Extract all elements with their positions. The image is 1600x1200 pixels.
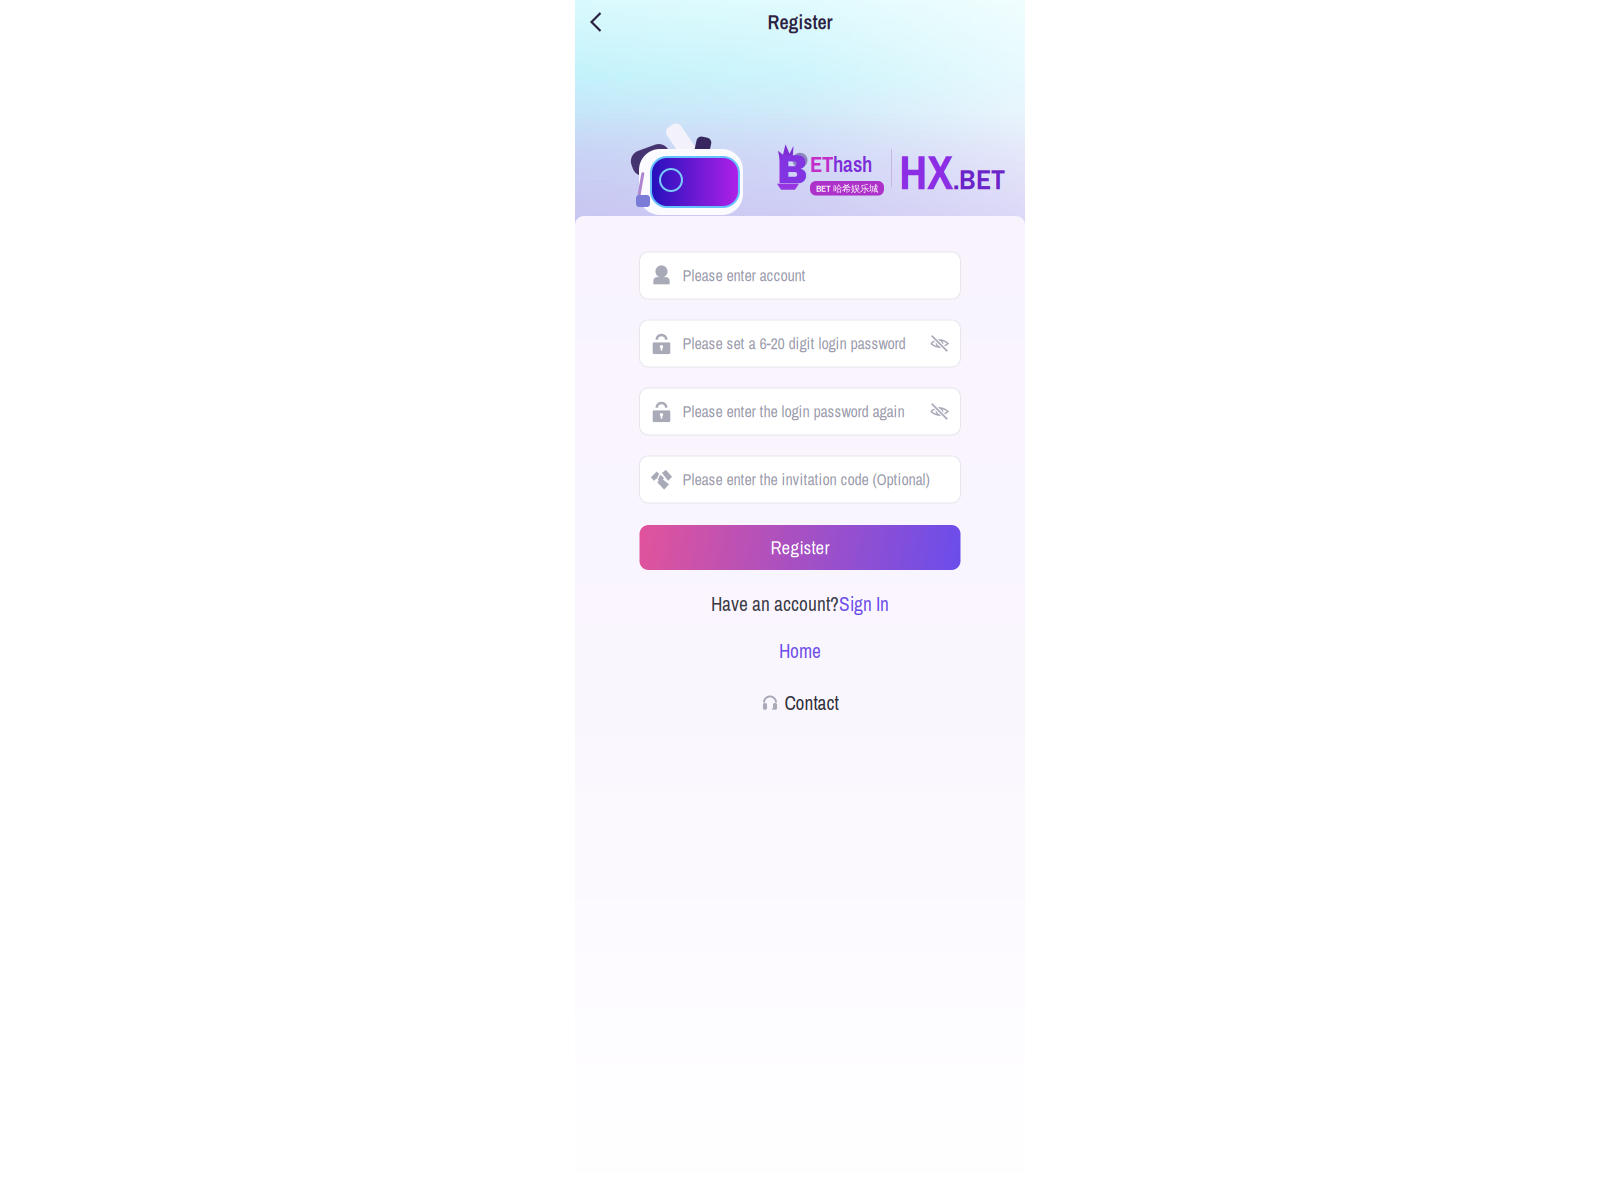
button[interactable]: Please enter account (639, 252, 960, 299)
staticText: Home (779, 638, 821, 664)
staticText: Contact (784, 690, 838, 716)
staticText: Please set a 6-20 digit login password (682, 333, 905, 354)
button[interactable]: Have an account? (711, 591, 889, 617)
button[interactable]: Please set a 6-20 digit login password (639, 320, 960, 367)
staticText: Please enter the login password again (682, 401, 904, 422)
staticText: ET (810, 148, 833, 179)
staticText: Sign In (839, 591, 889, 617)
staticText: Please enter account (682, 265, 805, 286)
staticText: Have an account? (711, 591, 839, 617)
button[interactable]: Please enter the login password again (639, 388, 960, 435)
staticText: Register (767, 8, 832, 35)
button[interactable]: Register (639, 525, 960, 570)
staticText: HX (899, 140, 953, 204)
button[interactable]: Home (779, 638, 821, 664)
button[interactable]: Back (575, 0, 617, 44)
button[interactable]: Contact (761, 690, 838, 716)
staticText: hash (833, 150, 872, 178)
staticText: Register (770, 535, 829, 560)
staticText: .BET (953, 160, 1005, 198)
staticText: B (776, 148, 807, 192)
staticText: Please enter the invitation code (Option… (682, 469, 929, 490)
staticText: BET 哈希娱乐城 (816, 182, 878, 195)
button[interactable]: Please enter the invitation code (Option… (639, 456, 960, 503)
